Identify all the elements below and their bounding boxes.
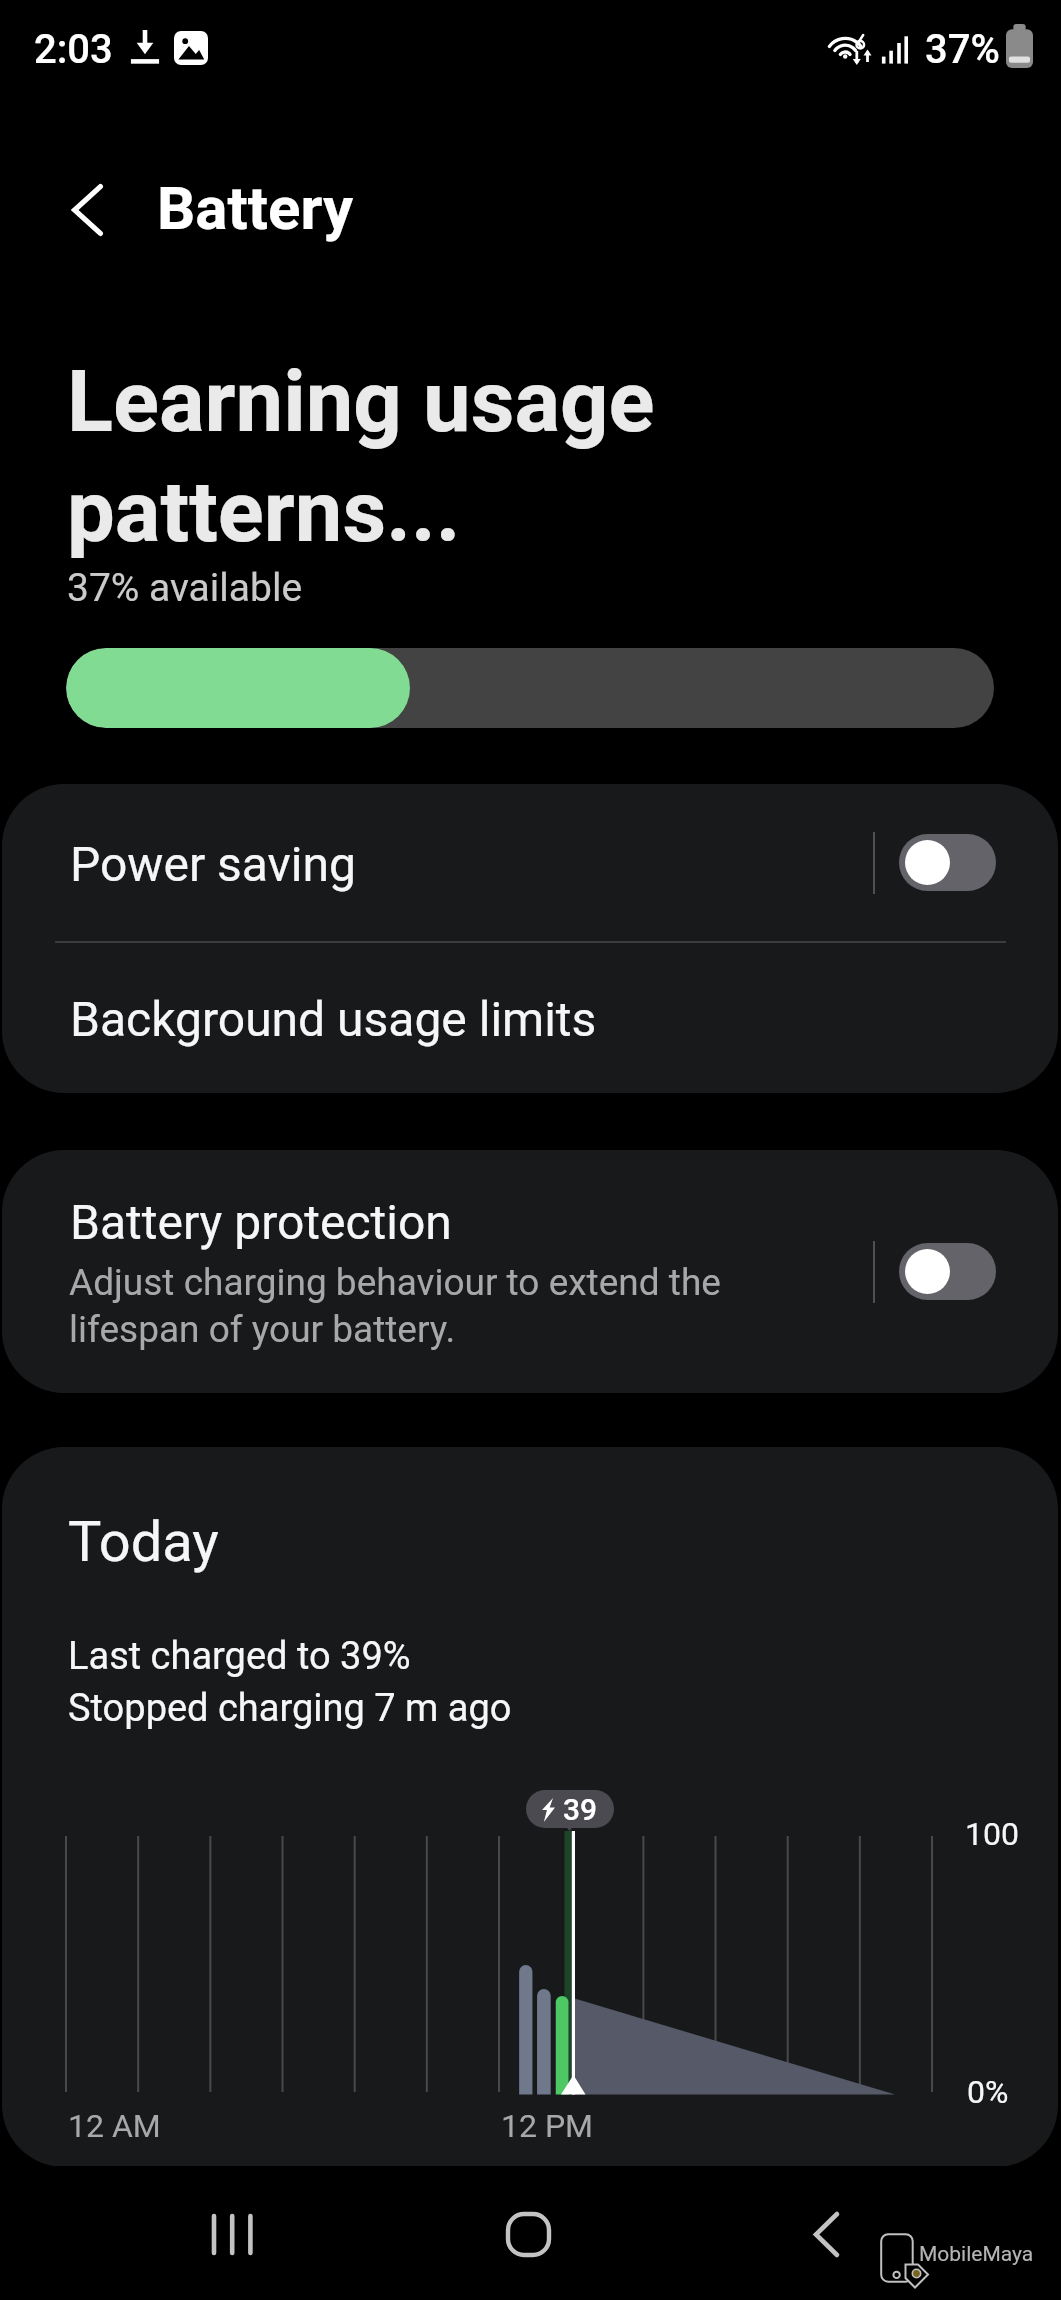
- staticText: 12 AM: [68, 2107, 161, 2145]
- staticText: 12 PM: [501, 2107, 594, 2145]
- staticText: Battery: [157, 173, 354, 243]
- button[interactable]: Back: [776, 2184, 876, 2284]
- staticText: 37%: [925, 26, 1000, 73]
- button[interactable]: Recents: [181, 2184, 281, 2284]
- staticText: MobileMaya: [919, 2242, 1034, 2267]
- button[interactable]: Home: [478, 2184, 578, 2284]
- staticText: Last charged to 39% Stopped charging 7 m…: [68, 1634, 512, 1730]
- staticText: 39: [563, 1792, 598, 1827]
- staticText: 2:03: [34, 26, 113, 73]
- button[interactable]: Toggle: [899, 834, 996, 891]
- staticText: 37% available: [67, 565, 303, 611]
- button[interactable]: Toggle: [899, 1243, 996, 1300]
- staticText: Power saving: [70, 836, 356, 892]
- staticText: Learning usage patterns...: [67, 352, 655, 562]
- button[interactable]: Today: [2, 1447, 1058, 2167]
- button[interactable]: Battery protection: [2, 1150, 1058, 1393]
- button[interactable]: Back: [47, 170, 127, 250]
- staticText: Adjust charging behaviour to extend the …: [69, 1261, 721, 1351]
- button[interactable]: Power saving: [2, 784, 1058, 941]
- button[interactable]: Background usage limits: [2, 943, 1058, 1093]
- staticText: 0%: [967, 2073, 1009, 2111]
- staticText: Today: [68, 1509, 219, 1575]
- staticText: Background usage limits: [70, 991, 597, 1047]
- staticText: 100: [965, 1815, 1019, 1853]
- staticText: Battery protection: [70, 1194, 452, 1250]
